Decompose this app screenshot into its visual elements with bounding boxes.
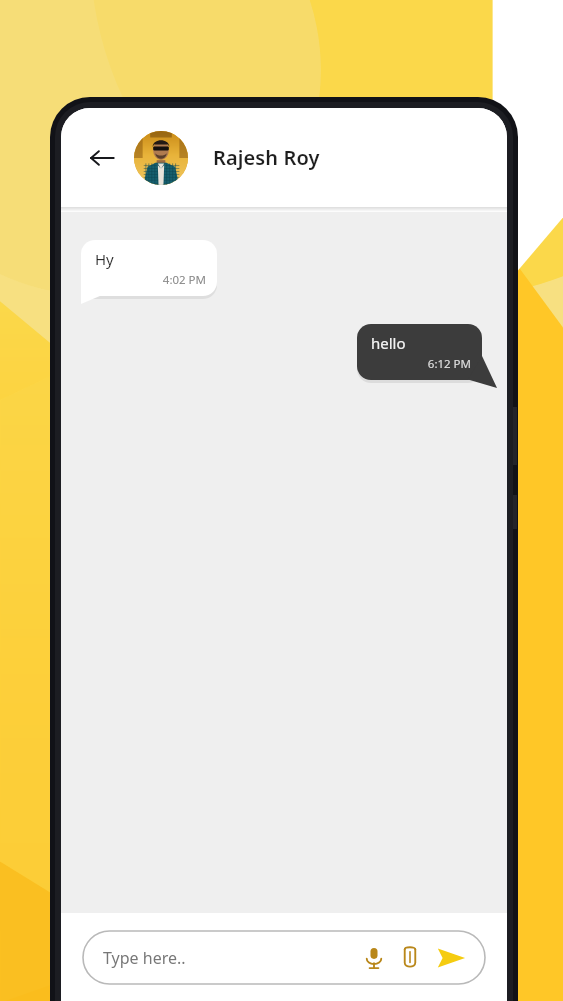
staticText: 4:02 PM (81, 272, 206, 288)
button[interactable]: hello (357, 324, 497, 388)
button[interactable]: Voice message (357, 941, 391, 975)
button[interactable]: Attach file (393, 941, 427, 975)
staticText: Rajesh Roy (213, 144, 320, 171)
staticText: hello (371, 333, 406, 353)
staticText: 6:12 PM (357, 356, 471, 372)
staticText: Type here.. (103, 947, 357, 969)
button[interactable]: Rajesh Roy profile photo (134, 131, 188, 185)
button[interactable]: Back (79, 135, 125, 181)
button[interactable]: Send (431, 938, 471, 978)
button[interactable]: Type here.. (83, 931, 485, 984)
button[interactable]: Hy (81, 240, 217, 304)
staticText: Hy (95, 249, 114, 269)
